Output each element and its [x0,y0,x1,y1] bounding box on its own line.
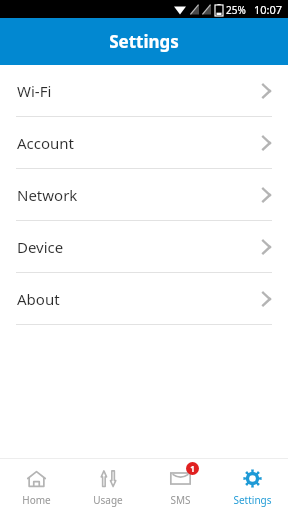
button[interactable]: Settings [216,459,288,512]
button[interactable]: Network [0,169,288,220]
staticText: Usage [93,493,123,507]
button[interactable]: Wi-Fi [0,65,288,116]
button[interactable]: 1 [144,459,216,512]
staticText: About [17,289,60,309]
button[interactable]: Home [0,459,72,512]
staticText: Wi-Fi [17,81,52,101]
button[interactable]: Usage [72,459,144,512]
staticText: Account [17,133,75,153]
staticText: 25% [226,3,246,17]
staticText: Device [17,237,64,257]
staticText: 1 [190,463,195,474]
staticText: Network [17,185,78,205]
staticText: Home [22,493,51,507]
button[interactable]: About [0,273,288,324]
staticText: 10:07 [254,2,283,17]
staticText: Settings [233,493,272,507]
staticText: SMS [170,493,191,507]
button[interactable]: Device [0,221,288,272]
staticText: Settings [109,30,179,53]
button[interactable]: Account [0,117,288,168]
